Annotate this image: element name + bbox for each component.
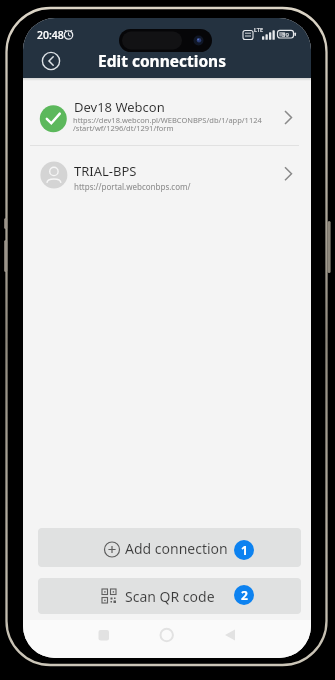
button[interactable]	[33, 43, 69, 79]
button[interactable]	[23, 620, 119, 658]
staticText: /start/wf/1296/dt/1291/form	[73, 123, 174, 133]
staticText: TRIAL-BPS	[74, 162, 137, 180]
button[interactable]: Scan QR code	[38, 578, 301, 614]
staticText: https://dev18.webcon.pl/WEBCONBPS/db/1/a…	[73, 115, 262, 125]
staticText: https://portal.webconbps.com/	[74, 181, 191, 192]
button[interactable]: Dev18 Webcon	[23, 80, 311, 145]
button[interactable]: Add connection	[38, 528, 301, 567]
staticText: 2	[241, 587, 248, 603]
button[interactable]	[215, 620, 311, 658]
staticText: 1	[241, 542, 248, 558]
staticText: LTE	[254, 26, 263, 33]
staticText: Scan QR code	[125, 587, 215, 606]
staticText: Dev18 Webcon	[74, 98, 165, 116]
staticText: 20:48	[37, 28, 64, 42]
staticText: Add connection	[125, 539, 228, 558]
button[interactable]: TRIAL-BPS	[23, 146, 311, 216]
staticText: Edit connections	[23, 50, 306, 71]
button[interactable]	[119, 620, 215, 658]
staticText: 39	[282, 31, 289, 39]
